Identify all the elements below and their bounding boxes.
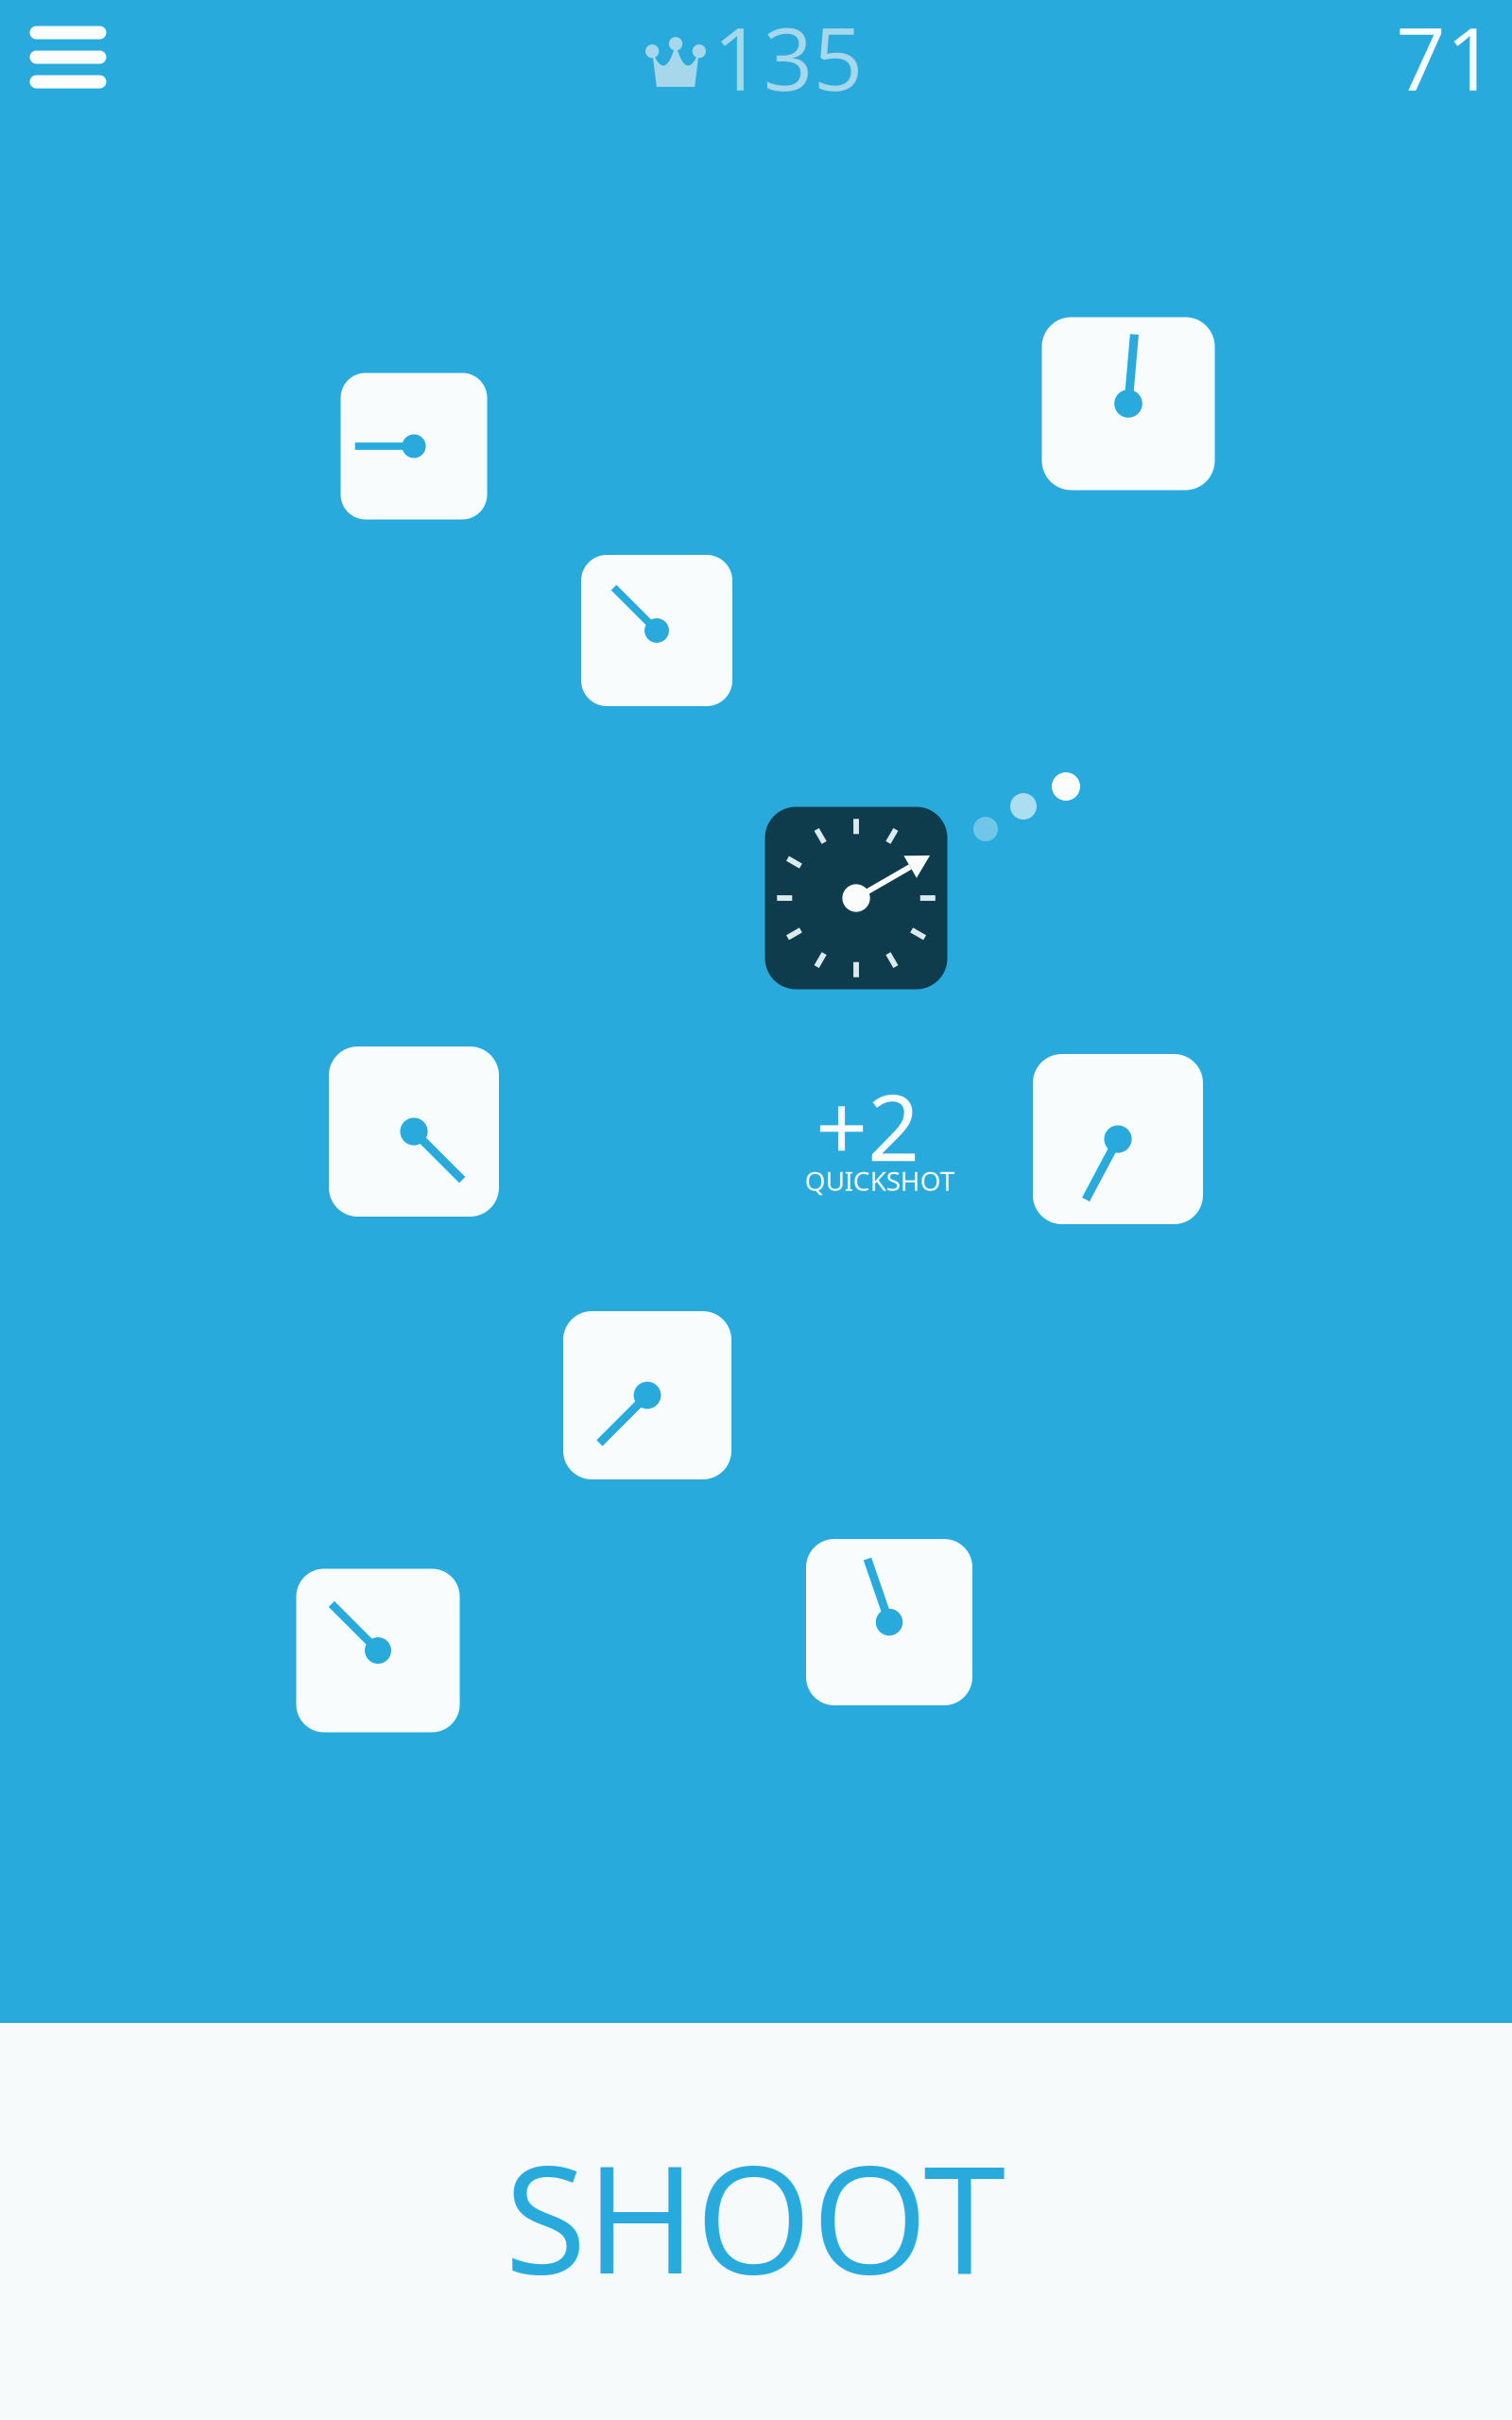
staticText: 71: [1396, 0, 1496, 116]
staticText: QUICKSHOT: [805, 1163, 955, 1198]
staticText: SHOOT: [505, 2115, 1005, 2317]
staticText: +2: [816, 1066, 919, 1186]
button[interactable]: SHOOT: [0, 2023, 1512, 2420]
staticText: 135: [713, 0, 863, 116]
button[interactable]: Menu: [0, 0, 151, 127]
